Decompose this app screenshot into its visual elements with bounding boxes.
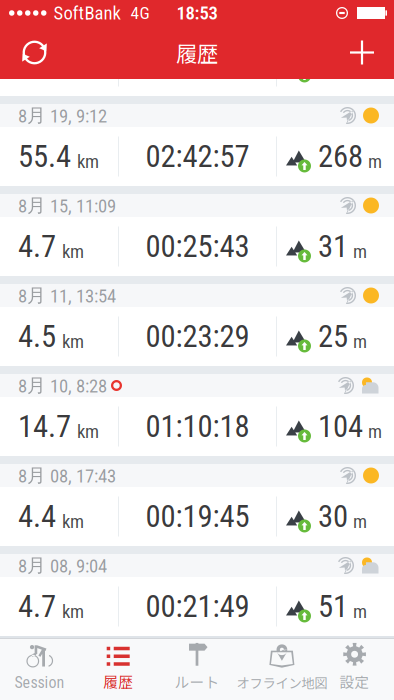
- button[interactable]: 8月 08, 17:43: [0, 456, 394, 546]
- button[interactable]: Previous activity: [0, 79, 394, 96]
- staticText: 00:25:43: [145, 228, 249, 264]
- button[interactable]: Refresh: [0, 26, 62, 79]
- staticText: km: [62, 511, 84, 532]
- staticText: m: [368, 151, 382, 172]
- staticText: 4.5: [18, 318, 56, 354]
- staticText: 30: [318, 498, 348, 534]
- staticText: 8月 10, 8:28: [18, 374, 107, 397]
- staticText: 4.7: [18, 228, 56, 264]
- staticText: 55.4: [18, 138, 71, 174]
- staticText: 8月 19, 9:12: [18, 104, 107, 127]
- staticText: 02:42:57: [145, 138, 249, 174]
- staticText: SoftBank: [53, 2, 120, 24]
- staticText: 履歴: [103, 671, 133, 692]
- staticText: 31: [318, 228, 348, 264]
- staticText: m: [353, 331, 367, 352]
- staticText: m: [353, 241, 367, 262]
- button[interactable]: 8月 15, 11:09: [0, 186, 394, 276]
- staticText: km: [77, 151, 99, 172]
- staticText: 25: [318, 318, 348, 354]
- staticText: 00:00:00: [145, 48, 249, 84]
- staticText: 01:10:18: [145, 408, 249, 444]
- staticText: m: [368, 421, 382, 442]
- button[interactable]: 8月 08, 9:04: [0, 546, 394, 636]
- staticText: 00:21:49: [145, 588, 249, 624]
- button[interactable]: 8月 11, 13:54: [0, 276, 394, 366]
- button[interactable]: 8月 19, 9:12: [0, 96, 394, 186]
- button[interactable]: Settings: [315, 639, 394, 700]
- staticText: 12: [318, 48, 348, 84]
- staticText: Session: [14, 673, 64, 692]
- staticText: 8月 08, 17:43: [18, 464, 116, 487]
- staticText: 0.0: [18, 48, 56, 84]
- staticText: m: [353, 511, 367, 532]
- staticText: 4G: [130, 3, 149, 23]
- staticText: 設定: [340, 671, 370, 692]
- staticText: 00:19:45: [145, 498, 249, 534]
- button[interactable]: Route: [158, 639, 236, 700]
- staticText: 18:53: [176, 2, 217, 24]
- staticText: m: [353, 61, 367, 82]
- staticText: km: [62, 331, 84, 352]
- staticText: km: [77, 421, 99, 442]
- button[interactable]: History: [79, 639, 158, 700]
- staticText: 268: [318, 138, 363, 174]
- staticText: 4.4: [18, 498, 56, 534]
- staticText: km: [62, 61, 84, 82]
- staticText: 51: [318, 588, 348, 624]
- button[interactable]: 8月 10, 8:28: [0, 366, 394, 456]
- button[interactable]: Add: [336, 26, 394, 79]
- staticText: オフライン地図: [236, 673, 327, 692]
- staticText: 8月 15, 11:09: [18, 194, 116, 217]
- staticText: 8月 11, 13:54: [18, 284, 116, 307]
- staticText: 8月 08, 9:04: [18, 554, 107, 577]
- button[interactable]: Session: [0, 639, 79, 700]
- staticText: ルート: [174, 671, 219, 692]
- staticText: 履歴: [176, 37, 218, 68]
- staticText: 4.7: [18, 588, 56, 624]
- staticText: 00:23:29: [145, 318, 249, 354]
- staticText: m: [353, 601, 367, 622]
- staticText: km: [62, 601, 84, 622]
- button[interactable]: Offline maps: [236, 639, 315, 700]
- staticText: km: [62, 241, 84, 262]
- staticText: 104: [318, 408, 363, 444]
- staticText: 14.7: [18, 408, 71, 444]
